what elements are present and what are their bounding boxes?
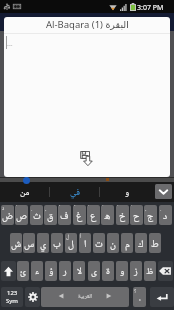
button[interactable]: د [159, 205, 172, 225]
staticText: أ [80, 233, 82, 241]
staticText: 3:07 PM [137, 3, 164, 13]
button[interactable]: Backspace [158, 261, 173, 281]
button[interactable]: ف [58, 205, 71, 225]
button[interactable]: ح [130, 205, 143, 225]
button[interactable]: ج [144, 205, 157, 225]
staticText: ي [40, 236, 47, 253]
staticText: ... [7, 39, 13, 49]
button[interactable]: ئ [17, 261, 29, 281]
staticText: ة [106, 264, 110, 280]
button[interactable]: . [133, 287, 146, 307]
staticText: ق [47, 208, 54, 225]
staticText: ت [95, 236, 103, 253]
staticText: خ [119, 208, 126, 225]
button[interactable]: ط [149, 233, 161, 253]
staticText: د [163, 208, 168, 225]
staticText: س [24, 236, 35, 253]
button[interactable]: م [121, 233, 133, 253]
staticText: ؟ [134, 287, 137, 295]
staticText: غ [76, 208, 83, 225]
button[interactable]: ا [79, 233, 91, 253]
staticText: Sym [6, 297, 18, 305]
staticText: ظ [146, 264, 154, 280]
staticText: م [125, 236, 130, 253]
button[interactable]: ظ [144, 261, 156, 281]
button[interactable]: Symbols [1, 287, 23, 307]
staticText: في [70, 185, 80, 200]
button[interactable]: ة [102, 261, 114, 281]
staticText: ى [91, 264, 97, 280]
button[interactable]: و [100, 182, 154, 202]
staticText: ل [68, 236, 74, 253]
button[interactable]: ر [59, 261, 71, 281]
staticText: ا [84, 236, 87, 253]
staticText: و [125, 185, 130, 200]
staticText: ف [60, 208, 69, 225]
button[interactable]: ه [101, 205, 114, 225]
button[interactable]: ص [15, 205, 28, 225]
button[interactable]: Settings [25, 287, 40, 307]
staticText: من [20, 185, 30, 200]
button[interactable]: ت [93, 233, 105, 253]
staticText: ع [90, 208, 97, 225]
staticText: ز [134, 264, 138, 280]
staticText: و [120, 264, 125, 280]
staticText: ط [151, 236, 159, 253]
button[interactable]: ل [65, 233, 77, 253]
button[interactable]: من [0, 182, 49, 202]
staticText: ث [33, 208, 41, 225]
button[interactable]: ن [107, 233, 119, 253]
staticText: ج [147, 208, 154, 225]
button[interactable]: ز [130, 261, 142, 281]
staticText: ك [138, 236, 144, 253]
staticText: ر [63, 264, 67, 280]
staticText: ض [2, 208, 13, 225]
staticText: ب [53, 236, 61, 253]
button[interactable]: العربية [41, 287, 129, 307]
button[interactable]: و [116, 261, 128, 281]
button[interactable]: ش [10, 233, 22, 253]
staticText: ش [11, 236, 22, 253]
button[interactable]: لا [73, 261, 85, 281]
button[interactable]: ى [88, 261, 100, 281]
staticText: Al-Baqara (1) البقرة [46, 18, 129, 31]
button[interactable]: ك [135, 233, 147, 253]
button[interactable]: ق [44, 205, 57, 225]
staticText: لا [77, 264, 82, 280]
button[interactable]: ؤ [45, 261, 57, 281]
staticText: ح [133, 208, 140, 225]
staticText: 123 [7, 289, 18, 297]
button[interactable]: ي [37, 233, 49, 253]
staticText: ه [104, 208, 111, 225]
button[interactable]: ء [31, 261, 43, 281]
button[interactable]: ث [30, 205, 43, 225]
staticText: ذ [2, 205, 5, 213]
button[interactable]: Enter [150, 287, 174, 307]
staticText: ل [66, 233, 70, 241]
button[interactable]: ض [1, 205, 14, 225]
button[interactable]: س [23, 233, 35, 253]
button[interactable]: غ [73, 205, 86, 225]
other: Save [79, 151, 96, 166]
button[interactable]: Shift [1, 261, 16, 281]
staticText: ص [16, 208, 27, 225]
staticText: ن [110, 236, 116, 253]
button[interactable]: خ [116, 205, 129, 225]
staticText: ئ [20, 264, 26, 280]
staticText: العربية [78, 292, 93, 302]
staticText: ؤ [49, 264, 54, 280]
staticText: . [139, 291, 141, 305]
button[interactable]: More suggestions [155, 184, 172, 199]
button[interactable]: في [50, 182, 99, 202]
button[interactable]: ع [87, 205, 100, 225]
button[interactable]: ب [51, 233, 63, 253]
staticText: ء [35, 264, 40, 280]
